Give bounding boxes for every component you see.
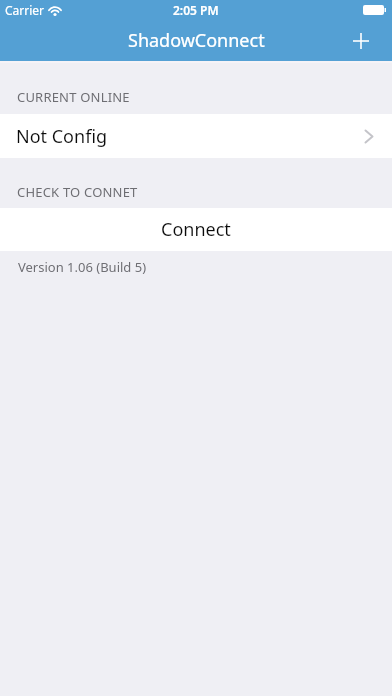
- staticText: CHECK TO CONNET: [17, 183, 138, 201]
- staticText: Version 1.06 (Build 5): [18, 258, 147, 276]
- staticText: Connect: [161, 217, 231, 242]
- button[interactable]: Connect: [0, 208, 392, 251]
- staticText: ShadowConnect: [128, 28, 265, 53]
- button[interactable]: [347, 27, 375, 55]
- staticText: Carrier: [5, 2, 45, 18]
- button[interactable]: Not Config: [0, 114, 392, 158]
- staticText: Not Config: [16, 124, 108, 149]
- staticText: 2:05 PM: [173, 2, 219, 18]
- staticText: CURRENT ONLINE: [17, 88, 130, 106]
